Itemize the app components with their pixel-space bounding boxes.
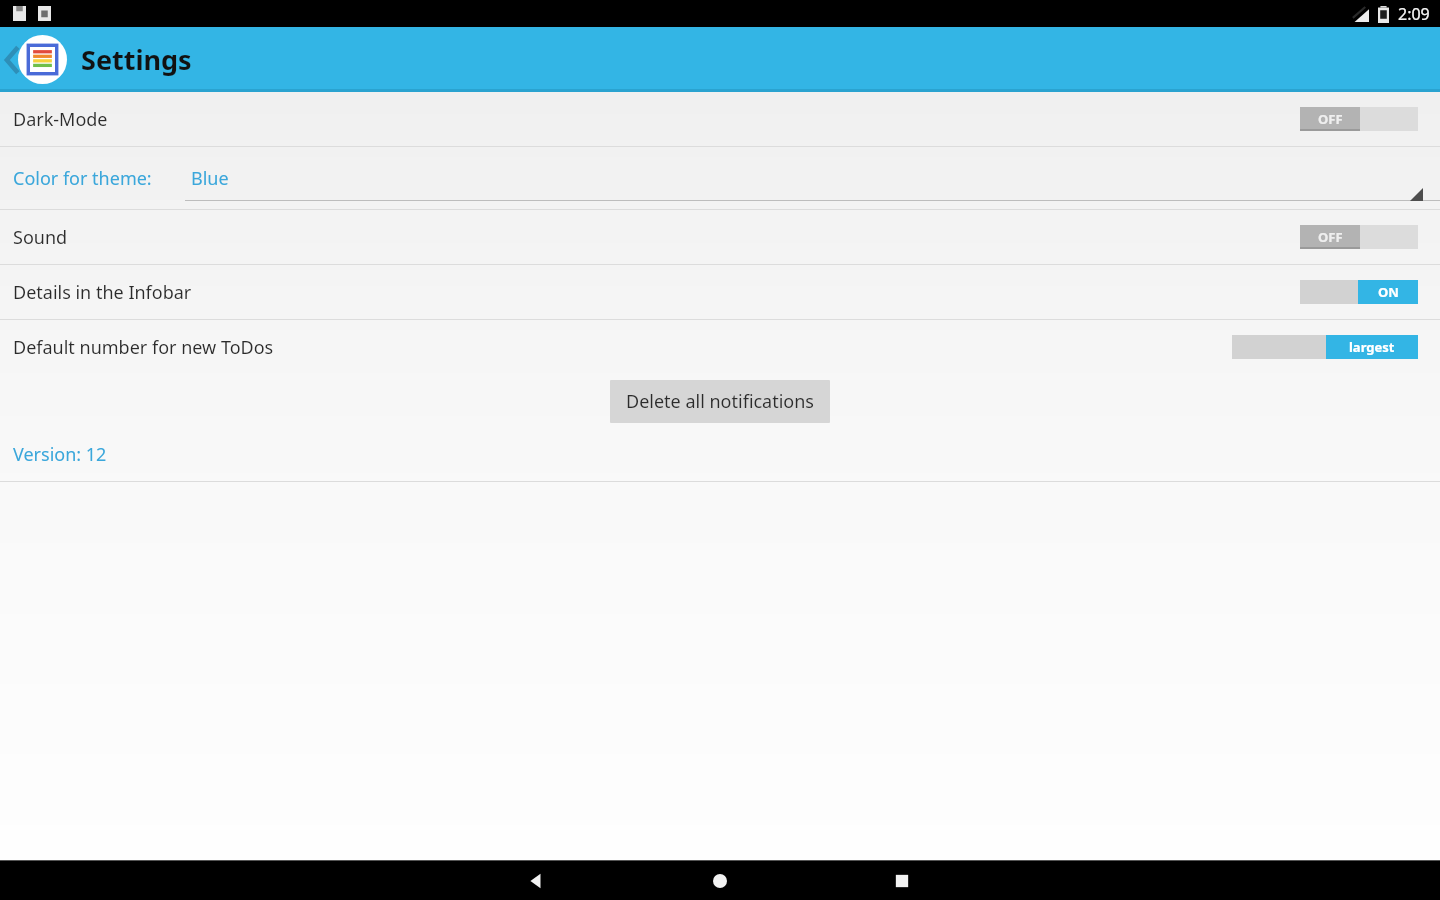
- staticText: Details in the Infobar: [13, 280, 192, 305]
- staticText: OFF: [1318, 110, 1343, 128]
- staticText: Version: 12: [13, 442, 107, 467]
- button[interactable]: Home: [706, 867, 734, 895]
- staticText: Blue: [191, 166, 229, 191]
- button[interactable]: Sound: [0, 210, 1440, 264]
- button[interactable]: Version: 12: [0, 428, 1440, 481]
- button[interactable]: OFF: [1300, 225, 1418, 249]
- button[interactable]: Back: [522, 867, 550, 895]
- button[interactable]: ON: [1300, 280, 1418, 304]
- staticText: 2:09: [1398, 3, 1430, 25]
- button[interactable]: Default number for new ToDos: [0, 320, 1440, 374]
- button[interactable]: largest: [1232, 335, 1418, 359]
- staticText: Settings: [81, 41, 192, 78]
- button[interactable]: OFF: [1300, 107, 1418, 131]
- staticText: Color for theme:: [13, 166, 152, 191]
- button[interactable]: Delete all notifications: [610, 380, 830, 423]
- staticText: largest: [1349, 338, 1395, 356]
- button[interactable]: Recent apps: [888, 867, 916, 895]
- button[interactable]: Back: [2, 40, 24, 80]
- staticText: OFF: [1318, 228, 1343, 246]
- staticText: Dark-Mode: [13, 107, 108, 132]
- staticText: Delete all notifications: [626, 389, 814, 414]
- staticText: Default number for new ToDos: [13, 335, 274, 360]
- button[interactable]: Color for theme:: [0, 147, 1440, 209]
- staticText: Sound: [13, 225, 68, 250]
- button[interactable]: Dark-Mode: [0, 92, 1440, 146]
- staticText: ON: [1378, 283, 1399, 301]
- button[interactable]: Details in the Infobar: [0, 265, 1440, 319]
